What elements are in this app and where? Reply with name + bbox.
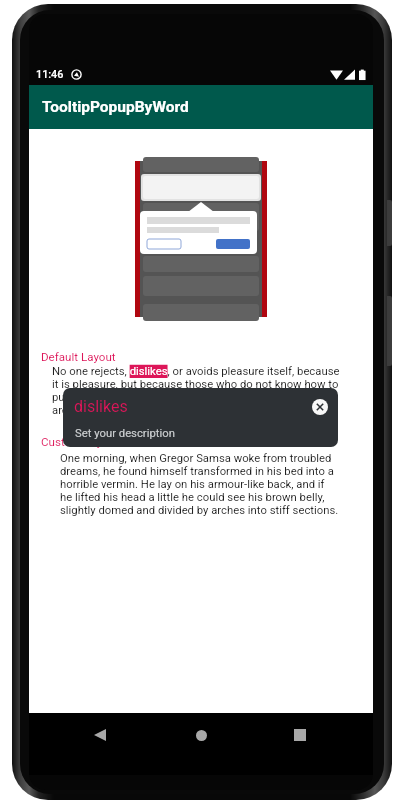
- staticText: Custom Layout: [41, 435, 119, 449]
- button[interactable]: Recent apps: [286, 721, 314, 749]
- staticText: 11:46: [36, 68, 64, 81]
- staticText: Default Layout: [41, 350, 116, 364]
- staticText: dislikes: [74, 397, 128, 416]
- staticText: Set your description: [75, 427, 175, 440]
- button[interactable]: dislikes: [63, 388, 338, 447]
- button[interactable]: Close tooltip: [312, 399, 328, 415]
- staticText: TooltipPopupByWord: [42, 98, 189, 116]
- button[interactable]: Back: [86, 721, 114, 749]
- staticText: No one rejects, dislikes, or avoids plea…: [52, 365, 344, 417]
- button[interactable]: Home: [187, 721, 215, 749]
- staticText: One morning, when Gregor Samsa woke from…: [60, 452, 339, 517]
